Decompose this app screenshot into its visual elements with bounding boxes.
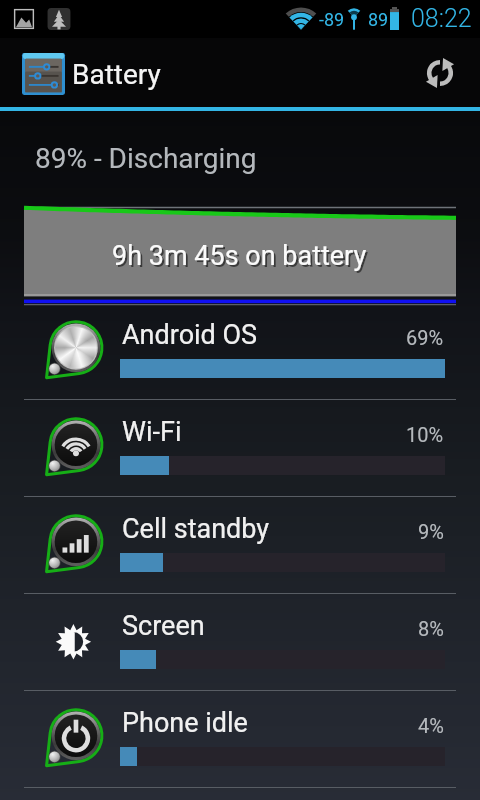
- button[interactable]: Settings: [13, 43, 73, 103]
- staticText: Phone idle: [122, 707, 248, 739]
- staticText: 69%: [406, 326, 444, 349]
- staticText: -89: [319, 9, 345, 30]
- button[interactable]: Phone idle: [0, 691, 480, 788]
- staticText: 9%: [418, 520, 444, 543]
- staticText: 9h 3m 45s on battery: [114, 242, 369, 274]
- staticText: 4%: [418, 714, 444, 737]
- staticText: 9h 3m 45s on battery: [112, 240, 367, 272]
- staticText: Cell standby: [122, 513, 270, 545]
- staticText: Battery: [72, 58, 161, 91]
- staticText: Android OS: [122, 319, 258, 351]
- button[interactable]: Android OS: [0, 303, 480, 400]
- button[interactable]: Wi-Fi: [0, 400, 480, 497]
- staticText: Wi-Fi: [122, 416, 182, 448]
- staticText: 10%: [406, 423, 444, 446]
- staticText: 08:22: [411, 4, 472, 33]
- button[interactable]: Cell standby: [0, 497, 480, 594]
- staticText: 8%: [418, 617, 444, 640]
- staticText: Screen: [122, 610, 205, 642]
- staticText: 89: [368, 9, 389, 30]
- button[interactable]: Screen: [0, 594, 480, 691]
- button[interactable]: Refresh: [411, 44, 469, 102]
- staticText: 89% - Discharging: [35, 142, 257, 175]
